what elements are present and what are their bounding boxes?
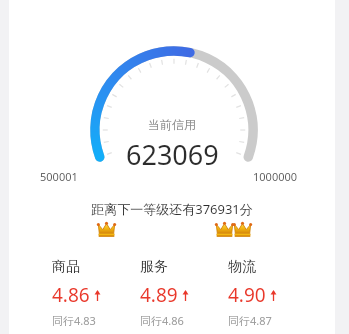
other: Up — [94, 290, 101, 301]
staticText: 4.89 — [140, 282, 178, 308]
button[interactable]: 物流 — [228, 258, 316, 328]
staticText: 同行4.86 — [140, 313, 184, 328]
staticText: 距离下一等级还有376931分 — [9, 200, 335, 218]
staticText: 服务 — [140, 258, 168, 276]
staticText: 623069 — [126, 136, 219, 173]
staticText: 1000000 — [253, 169, 298, 184]
staticText: 同行4.87 — [228, 313, 272, 328]
other: Up — [182, 290, 189, 301]
staticText: 4.90 — [228, 282, 266, 308]
button[interactable]: 服务 — [140, 258, 228, 328]
staticText: 500001 — [40, 169, 78, 184]
staticText: 物流 — [228, 258, 256, 276]
other: Up — [270, 290, 277, 301]
staticText: 当前信用 — [148, 117, 196, 132]
staticText: 4.86 — [52, 282, 90, 308]
staticText: 同行4.83 — [52, 313, 96, 328]
staticText: 商品 — [52, 258, 80, 276]
button[interactable]: 商品 — [52, 258, 140, 328]
